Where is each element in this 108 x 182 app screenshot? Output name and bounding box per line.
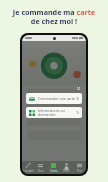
staticText: Virer <box>38 169 44 173</box>
button[interactable]: Profil <box>60 161 73 174</box>
staticText: Comptes <box>23 169 34 173</box>
staticText: Profil <box>63 169 70 173</box>
button[interactable]: Commander une carte <box>26 93 82 104</box>
button[interactable]: Plus <box>73 161 86 174</box>
staticText: Je commande ma carte de chez moi ! <box>3 7 105 26</box>
button[interactable]: Comptes <box>22 161 34 174</box>
staticText: Cartes <box>50 169 58 173</box>
button[interactable]: Virer <box>34 161 47 174</box>
button[interactable]: Informations ou demandes <box>26 107 82 118</box>
staticText: Commander une carte <box>38 96 76 101</box>
staticText: Plus <box>77 169 83 173</box>
staticText: Informations ou demandes <box>38 108 76 117</box>
button[interactable]: Fermer <box>75 85 81 91</box>
button[interactable]: Cartes <box>47 161 60 174</box>
